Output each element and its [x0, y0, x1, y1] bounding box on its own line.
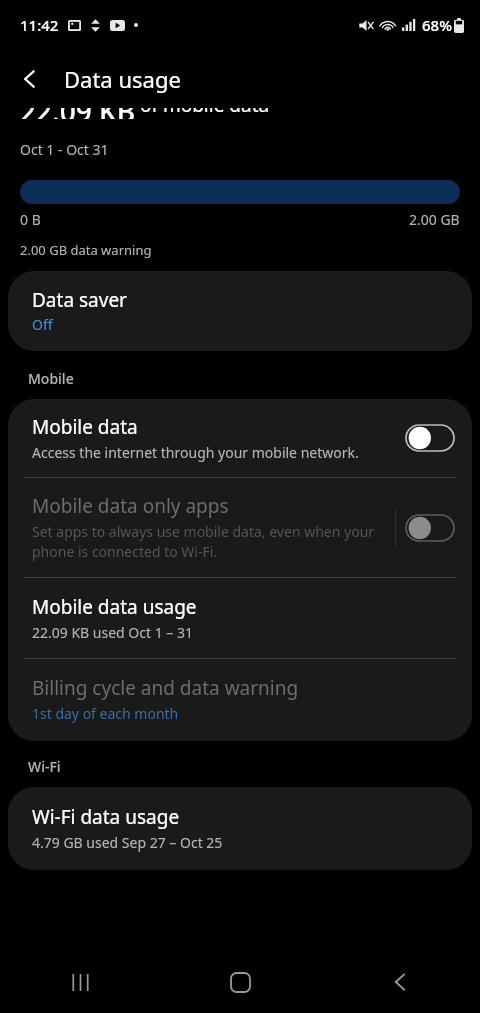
button[interactable]: Wi-Fi data usage	[8, 787, 472, 870]
staticText: Billing cycle and data warning	[32, 675, 299, 701]
staticText: 0 B	[20, 210, 41, 229]
staticText: 11:42	[20, 15, 59, 35]
button[interactable]: Mobile data only apps	[8, 478, 472, 577]
button[interactable]: Mobile data	[8, 399, 472, 477]
button[interactable]: Home	[160, 951, 320, 1013]
button[interactable]: Billing cycle and data warning	[8, 659, 472, 741]
button[interactable]: Recent apps	[0, 951, 160, 1013]
staticText: Mobile data usage	[32, 594, 197, 620]
staticText: Mobile data	[32, 414, 138, 440]
button[interactable]: Data saver	[8, 271, 472, 351]
staticText: Wi-Fi	[28, 757, 61, 776]
button[interactable]: Mobile data usage	[8, 578, 472, 658]
staticText: Wi-Fi data usage	[32, 804, 180, 830]
staticText: 22.09 KB	[20, 108, 135, 119]
button[interactable]: Navigate up	[6, 55, 54, 103]
staticText: Set apps to always use mobile data, even…	[32, 522, 385, 562]
staticText: Off	[32, 315, 53, 334]
staticText: Mobile	[28, 369, 74, 388]
staticText: of mobile data	[135, 108, 270, 117]
staticText: 68%	[422, 15, 452, 35]
staticText: 22.09 KB used Oct 1 – 31	[32, 623, 193, 642]
staticText: Data saver	[32, 287, 127, 313]
staticText: Mobile data only apps	[32, 493, 229, 519]
staticText: Access the internet through your mobile …	[32, 443, 359, 462]
staticText: Oct 1 - Oct 31	[20, 140, 109, 159]
staticText: 2.00 GB	[409, 210, 460, 229]
staticText: 2.00 GB data warning	[20, 241, 152, 259]
button[interactable]: Back	[320, 951, 480, 1013]
staticText: 1st day of each month	[32, 704, 179, 723]
staticText: 4.79 GB used Sep 27 – Oct 25	[32, 833, 223, 852]
staticText: Data usage	[64, 64, 181, 94]
